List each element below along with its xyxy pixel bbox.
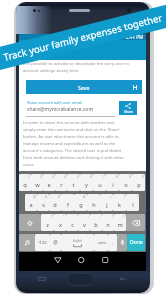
staticText: y [85, 181, 88, 189]
staticText: : [88, 215, 89, 219]
staticText: 2 [40, 175, 42, 179]
staticText: t [72, 181, 75, 189]
staticText: * [51, 215, 53, 219]
staticText: # [45, 195, 48, 199]
staticText: f [67, 201, 69, 209]
staticText: Share [124, 109, 133, 113]
staticText: Done [130, 239, 143, 246]
staticText: ; [100, 215, 101, 219]
button[interactable]: 3 [43, 174, 55, 191]
button[interactable]: ! [102, 214, 114, 231]
staticText: p [137, 181, 141, 189]
staticText: Share account with user email [27, 100, 82, 105]
staticText: l [132, 201, 134, 209]
button[interactable]: ) [126, 194, 139, 211]
button[interactable]: Voice input [117, 234, 127, 251]
staticText: 8 [116, 175, 118, 179]
staticText: 4 [64, 175, 66, 179]
staticText: " [63, 215, 65, 219]
staticText: r [60, 181, 63, 189]
staticText: @ [33, 195, 36, 199]
staticText: 2:41 PM [126, 34, 144, 40]
button[interactable]: ; [90, 214, 102, 231]
button[interactable]: .com [94, 234, 108, 251]
button[interactable]: 4 [55, 174, 67, 191]
staticText: w [35, 181, 40, 189]
button[interactable]: Save [26, 80, 142, 94]
staticText: c [71, 221, 74, 229]
staticText: j [106, 201, 108, 209]
button[interactable]: Backspace [126, 214, 145, 231]
staticText: u [98, 181, 102, 189]
staticText: ( [124, 195, 125, 199]
staticText: h [92, 201, 96, 209]
button[interactable]: # [37, 194, 49, 211]
staticText: Track your family expenses together [2, 11, 164, 64]
staticText: e [47, 181, 51, 189]
button[interactable]: 1 [19, 174, 31, 191]
staticText: 9 [129, 175, 131, 179]
button[interactable]: 2 [31, 174, 43, 191]
staticText: 0 [142, 175, 144, 179]
staticText: q [23, 181, 27, 189]
staticText: - [97, 195, 99, 199]
staticText: 7 [103, 175, 105, 179]
button[interactable]: 5 [67, 174, 80, 191]
button[interactable]: + [100, 194, 113, 211]
button[interactable]: 9 [119, 174, 132, 191]
staticText: v [83, 221, 86, 229]
button[interactable]: 8 [106, 174, 119, 191]
button[interactable]: " [54, 214, 66, 231]
staticText: In order to share this account with anot… [23, 120, 125, 167]
button[interactable]: Done [127, 234, 145, 251]
staticText: .com [97, 240, 106, 245]
button[interactable]: - [87, 194, 100, 211]
staticText: $ [58, 195, 60, 199]
button[interactable]: ? [114, 214, 126, 231]
staticText: 3 [52, 175, 54, 179]
button[interactable]: !123 [35, 234, 50, 251]
button[interactable]: @ [25, 194, 37, 211]
staticText: b [94, 221, 98, 229]
button[interactable]: . [108, 234, 117, 251]
staticText: i [112, 181, 114, 189]
staticText: z [46, 221, 49, 229]
staticText: It is possible to activate or deactivate… [23, 61, 129, 73]
staticText: ? [123, 215, 125, 219]
staticText: n [106, 221, 110, 229]
staticText: English [73, 239, 82, 243]
button[interactable]: * [41, 214, 54, 231]
button[interactable]: Space [61, 234, 94, 251]
staticText: !123 [38, 240, 47, 246]
button[interactable]: Symbols [19, 234, 35, 251]
button[interactable]: $ [49, 194, 61, 211]
button[interactable]: _ [61, 194, 74, 211]
staticText: d [53, 201, 57, 209]
staticText: a [29, 201, 33, 209]
button[interactable]: ' [66, 214, 78, 231]
staticText: & [83, 195, 86, 199]
staticText: 6 [90, 175, 92, 179]
button[interactable]: : [78, 214, 90, 231]
staticText: _ [71, 195, 73, 199]
staticText: g [79, 201, 83, 209]
button[interactable]: 6 [80, 174, 93, 191]
staticText: Save [78, 84, 90, 91]
staticText: ! [112, 215, 113, 219]
button[interactable]: ( [113, 194, 126, 211]
button[interactable]: Shift [19, 214, 41, 231]
staticText: x [59, 221, 62, 229]
button[interactable]: & [74, 194, 87, 211]
staticText: @ [53, 239, 58, 246]
button[interactable]: 7 [93, 174, 106, 191]
button[interactable]: 0 [132, 174, 145, 191]
staticText: . [112, 239, 114, 246]
button[interactable]: @ [50, 234, 61, 251]
staticText: 1 [28, 175, 30, 179]
staticText: share@mynicrabalance.com [27, 106, 94, 113]
staticText: ' [76, 215, 77, 219]
button[interactable]: Share [119, 101, 137, 115]
staticText: 5 [77, 175, 79, 179]
staticText: + [110, 195, 112, 199]
staticText: m [117, 221, 123, 229]
